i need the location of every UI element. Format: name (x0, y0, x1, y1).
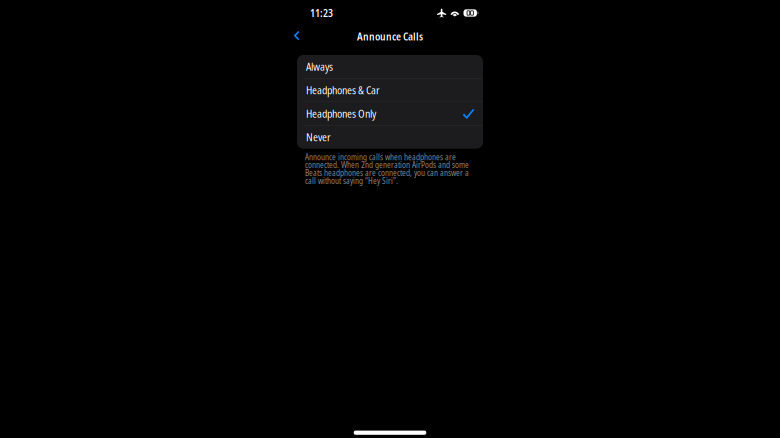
staticText: Announce Calls (357, 29, 423, 44)
button[interactable]: Headphones & Car (297, 78, 483, 101)
button[interactable]: Always (297, 55, 483, 78)
staticText: 11:23 (310, 6, 333, 20)
staticText: Always (306, 59, 333, 74)
staticText: Headphones & Car (306, 83, 380, 97)
staticText: Headphones Only (306, 106, 376, 121)
button[interactable]: Back (290, 27, 304, 46)
button[interactable]: Never (297, 126, 483, 149)
staticText: Never (306, 130, 331, 144)
staticText: Announce incoming calls when headphones … (305, 152, 469, 186)
button[interactable]: Headphones Only (297, 102, 483, 125)
